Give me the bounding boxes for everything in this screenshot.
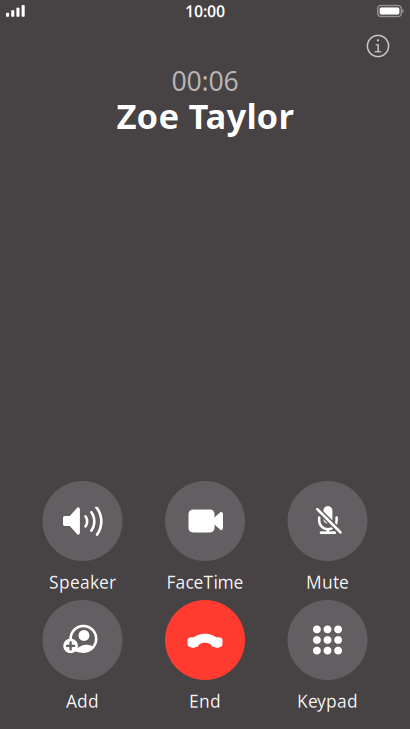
button[interactable]: Speaker	[21, 481, 144, 594]
button[interactable]: Call info	[361, 29, 395, 63]
button[interactable]: Add	[21, 600, 144, 713]
staticText: Speaker	[49, 570, 116, 593]
staticText: 10:00	[185, 0, 225, 22]
staticText: Zoe Taylor	[116, 92, 293, 138]
staticText: End	[189, 689, 221, 712]
staticText: FaceTime	[166, 570, 243, 593]
button[interactable]: Keypad	[266, 600, 389, 713]
staticText: Add	[66, 689, 99, 712]
staticText: Keypad	[297, 689, 358, 712]
staticText: Mute	[306, 570, 349, 593]
button[interactable]: End	[144, 600, 266, 713]
button[interactable]: FaceTime	[144, 481, 266, 594]
staticText: 00:06	[171, 63, 238, 98]
button[interactable]: Mute	[266, 481, 389, 594]
